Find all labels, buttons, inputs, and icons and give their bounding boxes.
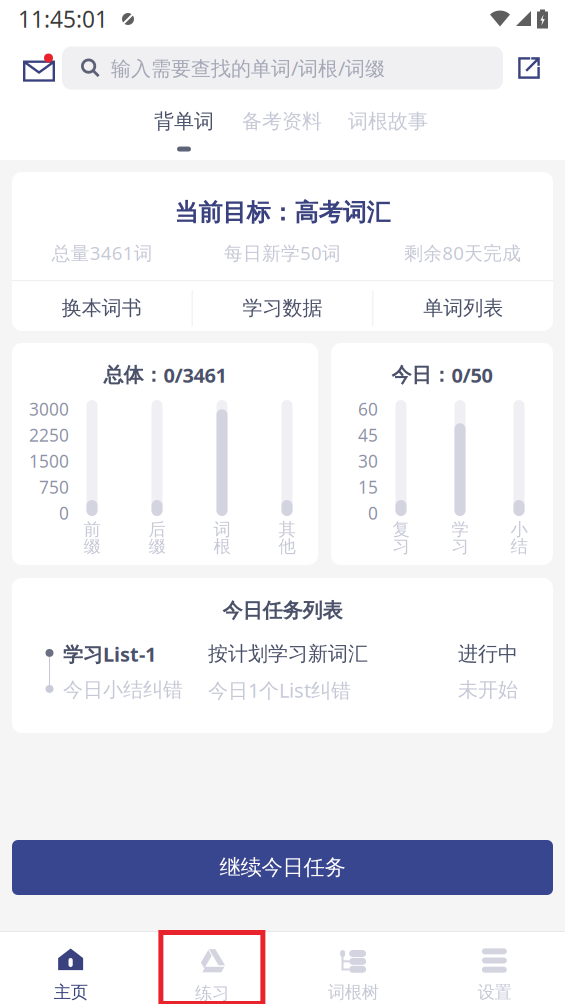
staticText: 继续今日任务 (219, 854, 345, 881)
staticText: 缀 (148, 536, 165, 557)
staticText: 进行中 (458, 642, 518, 666)
staticText: 每日新学50词 (224, 240, 341, 265)
staticText: 1500 (29, 449, 69, 472)
staticText: 30 (358, 449, 378, 472)
staticText: 今日1个List纠错 (208, 677, 351, 703)
staticText: 45 (358, 423, 378, 446)
staticText: 小 (510, 519, 527, 540)
button[interactable]: 主页 (0, 931, 141, 1004)
button[interactable]: 背单词 (152, 102, 216, 156)
staticText: 学习List-1 (63, 641, 156, 667)
staticText: 词根树 (328, 981, 379, 1003)
staticText: 0/3461 (163, 362, 226, 388)
button[interactable]: Share (503, 44, 555, 92)
staticText: 输入需要查找的单词/词根/词缀 (111, 55, 385, 81)
staticText: 0 (59, 501, 69, 524)
staticText: 0/50 (451, 362, 492, 388)
staticText: 今日小结纠错 (63, 678, 183, 702)
staticText: 习 (451, 536, 468, 557)
staticText: 前 (83, 519, 100, 540)
button[interactable]: Messages (16, 44, 62, 92)
staticText: 按计划学习新词汇 (208, 642, 368, 666)
button[interactable]: 换本词书 (12, 281, 192, 335)
button[interactable]: 设置 (424, 931, 565, 1004)
staticText: 当前目标：高考词汇 (174, 198, 390, 227)
staticText: 练习 (195, 982, 229, 1004)
staticText: 设置 (477, 981, 511, 1003)
button[interactable]: 单词列表 (373, 281, 553, 335)
staticText: 复 (392, 519, 409, 540)
staticText: 缀 (83, 536, 100, 557)
staticText: 词 (213, 519, 230, 540)
staticText: 后 (148, 519, 165, 540)
button[interactable]: 词根故事 (348, 102, 428, 156)
staticText: 11:45:01 (18, 4, 108, 34)
staticText: 今日任务列表 (222, 598, 342, 623)
staticText: 15 (358, 475, 378, 498)
button[interactable]: 继续今日任务 (12, 840, 553, 895)
staticText: 0 (368, 501, 378, 524)
staticText: 3000 (29, 397, 69, 420)
staticText: 总体： (103, 363, 163, 387)
staticText: 今日： (391, 363, 451, 387)
staticText: 主页 (54, 981, 88, 1003)
staticText: 结 (510, 536, 527, 557)
staticText: 未开始 (458, 678, 518, 702)
staticText: 习 (392, 536, 409, 557)
staticText: 总量3461词 (52, 240, 153, 265)
button[interactable]: 输入需要查找的单词/词根/词缀 (62, 46, 503, 89)
staticText: 背单词 (154, 109, 214, 134)
staticText: 750 (39, 475, 69, 498)
staticText: 剩余80天完成 (404, 240, 521, 265)
button[interactable]: 学习数据 (193, 281, 372, 335)
staticText: 备考资料 (242, 109, 322, 134)
staticText: 他 (278, 536, 295, 557)
staticText: 根 (213, 536, 230, 557)
staticText: 其 (278, 519, 295, 540)
staticText: 学习数据 (242, 296, 322, 320)
staticText: 词根故事 (348, 109, 428, 134)
button[interactable]: 备考资料 (242, 102, 322, 156)
staticText: 60 (358, 397, 378, 420)
button[interactable]: 词根树 (282, 931, 424, 1004)
staticText: 换本词书 (62, 296, 142, 320)
staticText: 学 (451, 519, 468, 540)
staticText: 2250 (29, 423, 69, 446)
button[interactable]: 练习 (141, 931, 282, 1004)
staticText: 单词列表 (423, 296, 503, 320)
